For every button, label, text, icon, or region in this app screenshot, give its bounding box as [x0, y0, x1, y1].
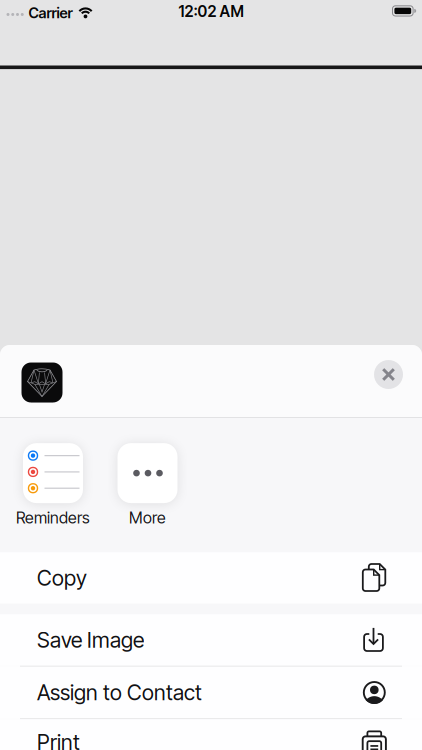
staticText: Save Image — [37, 627, 144, 653]
staticText: Copy — [37, 565, 87, 591]
button[interactable]: Reminders — [16, 443, 90, 527]
button[interactable]: Copy — [0, 552, 422, 604]
button[interactable]: Assign to Contact — [0, 667, 422, 718]
staticText: Reminders — [16, 508, 90, 527]
button[interactable]: Close — [374, 360, 403, 389]
button[interactable]: Print — [0, 719, 422, 750]
button[interactable]: More — [117, 443, 177, 527]
staticText: Assign to Contact — [37, 680, 202, 705]
staticText: Print — [37, 729, 80, 750]
staticText: Carrier — [28, 4, 72, 22]
staticText: More — [129, 508, 166, 527]
staticText: 12:02 AM — [178, 2, 243, 21]
button[interactable]: Save Image — [0, 614, 422, 666]
